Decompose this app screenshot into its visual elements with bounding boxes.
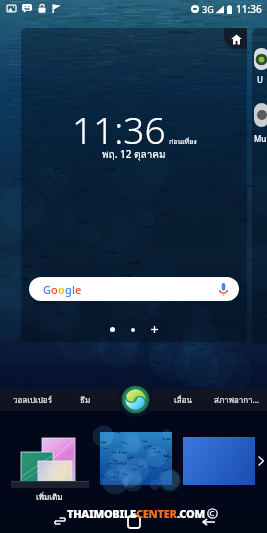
button[interactable]: ธีม [66,389,104,411]
staticText: 3G [202,3,214,15]
staticText: ธีม [80,394,91,407]
staticText: Mu [254,133,267,144]
staticText: g [65,282,72,297]
staticText: U [257,74,263,85]
staticText: ก่อนเที่ยง [169,136,197,147]
staticText: เพิ่มเติม [36,491,63,504]
staticText: l [72,282,75,297]
staticText: o [51,282,58,297]
staticText: สภาพอากา... [214,394,259,407]
staticText: G [43,282,51,297]
staticText: e [75,282,82,297]
staticText: .COM [177,506,205,521]
button[interactable]: Home screen [224,28,247,49]
button[interactable] [100,432,172,485]
staticText: วอลเปเปอร์ [13,394,52,407]
staticText: 11:36 [236,2,262,16]
button[interactable]: สภาพอากา... [206,389,267,411]
staticText: CENTER [136,506,177,521]
button[interactable]: G [29,277,239,301]
staticText: o [58,282,65,297]
button[interactable] [8,425,90,487]
button[interactable]: More wallpapers [254,451,267,471]
staticText: THAIMOBILE [67,506,136,521]
staticText: 11:36 [72,104,166,154]
button[interactable]: วอลเปเปอร์ [0,389,64,411]
button[interactable]: Theme store [118,382,153,417]
button[interactable]: Back [172,507,244,533]
button[interactable] [183,437,255,485]
button[interactable]: เลื่อน [160,389,206,411]
button[interactable]: Home [98,507,170,533]
staticText: พฤ. 12 ตุลาคม [102,147,166,163]
button[interactable]: Recent apps [24,507,96,533]
staticText: เลื่อน [174,394,192,407]
